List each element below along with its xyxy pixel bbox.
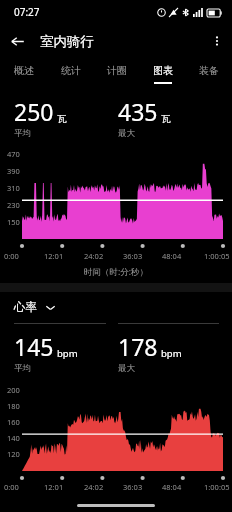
- staticText: 24:02: [84, 482, 104, 492]
- staticText: 150: [7, 217, 20, 227]
- staticText: 12:01: [44, 251, 64, 261]
- staticText: 36:03: [123, 482, 143, 492]
- staticText: 最大: [118, 128, 135, 139]
- staticText: 平均: [14, 363, 31, 374]
- staticText: 统计: [61, 64, 81, 77]
- staticText: 1:00:05: [204, 251, 230, 261]
- staticText: 1:00:05: [204, 482, 230, 492]
- staticText: 48:04: [162, 251, 182, 261]
- staticText: 心率: [14, 300, 37, 314]
- button[interactable]: 图表: [140, 58, 186, 90]
- staticText: 178: [118, 331, 158, 362]
- staticText: 图表: [153, 64, 173, 77]
- staticText: 室内骑行: [40, 33, 94, 50]
- staticText: 310: [7, 183, 20, 193]
- staticText: 250: [14, 96, 54, 127]
- button[interactable]: 装备: [186, 58, 232, 90]
- button[interactable]: 计圈: [94, 58, 140, 90]
- staticText: 0:00: [4, 251, 19, 261]
- staticText: 瓦: [57, 113, 67, 125]
- staticText: 瓦: [161, 113, 171, 125]
- staticText: 0:00: [4, 482, 19, 492]
- staticText: 平均: [14, 128, 31, 139]
- button[interactable]: 统计: [47, 58, 94, 90]
- staticText: 160: [7, 417, 20, 427]
- staticText: 36:03: [123, 251, 143, 261]
- staticText: 200: [7, 385, 20, 395]
- staticText: 12:01: [44, 482, 64, 492]
- staticText: 435: [118, 96, 158, 127]
- staticText: 24:02: [84, 251, 104, 261]
- staticText: 390: [7, 166, 20, 176]
- staticText: 时间（时:分:秒）: [84, 266, 149, 278]
- staticText: 180: [7, 401, 20, 411]
- staticText: bpm: [57, 347, 78, 360]
- staticText: 120: [7, 449, 20, 459]
- button[interactable]: 概述: [0, 58, 47, 90]
- button[interactable]: More options: [202, 26, 232, 56]
- button[interactable]: 心率: [14, 300, 232, 314]
- staticText: 装备: [199, 64, 219, 77]
- staticText: 48:04: [162, 482, 182, 492]
- staticText: 140: [7, 433, 20, 443]
- staticText: bpm: [161, 347, 182, 360]
- staticText: 计圈: [107, 64, 127, 77]
- staticText: 概述: [14, 64, 34, 77]
- staticText: 470: [7, 149, 20, 159]
- staticText: 07:27: [14, 5, 40, 19]
- staticText: 230: [7, 200, 20, 210]
- staticText: 145: [14, 331, 54, 362]
- staticText: 最大: [118, 363, 135, 374]
- button[interactable]: Back: [0, 24, 34, 58]
